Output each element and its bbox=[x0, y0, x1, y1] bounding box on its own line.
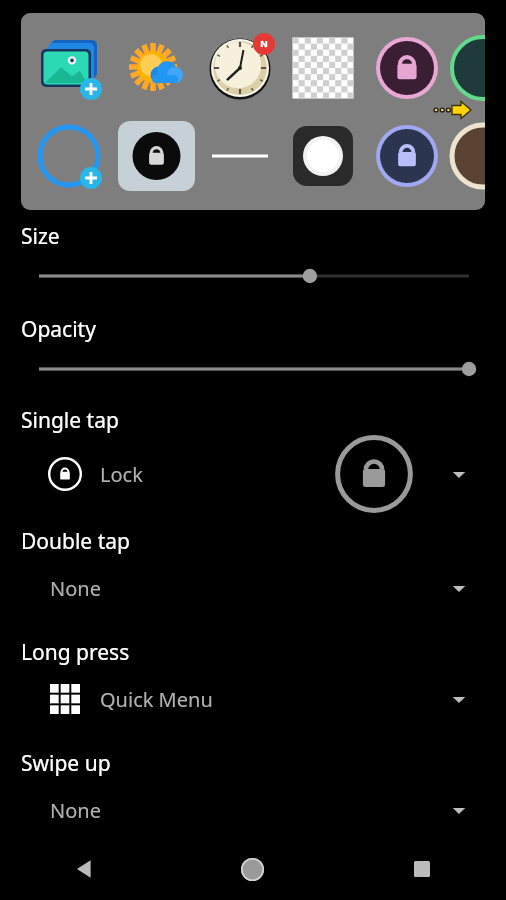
staticText: None bbox=[50, 797, 101, 824]
button[interactable]: Lock bbox=[0, 435, 506, 513]
button[interactable]: Home bbox=[168, 838, 337, 900]
staticText: Single tap bbox=[21, 406, 119, 435]
button[interactable]: None bbox=[0, 556, 506, 620]
staticText: Long press bbox=[21, 638, 130, 667]
staticText: None bbox=[50, 575, 101, 602]
button[interactable]: Lock icon style bbox=[118, 121, 195, 191]
button[interactable]: None bbox=[0, 778, 506, 842]
button[interactable]: Recent apps bbox=[337, 838, 506, 900]
button[interactable]: Quick Menu bbox=[0, 667, 506, 731]
button[interactable]: Slider bbox=[0, 265, 506, 287]
staticText: Swipe up bbox=[21, 749, 111, 778]
button[interactable]: Slider bbox=[0, 358, 506, 380]
button[interactable]: Back bbox=[0, 838, 168, 900]
staticText: Lock bbox=[100, 461, 143, 488]
staticText: Opacity bbox=[21, 315, 96, 344]
staticText: Double tap bbox=[21, 527, 130, 556]
staticText: Size bbox=[21, 222, 60, 251]
staticText: Quick Menu bbox=[100, 686, 213, 713]
